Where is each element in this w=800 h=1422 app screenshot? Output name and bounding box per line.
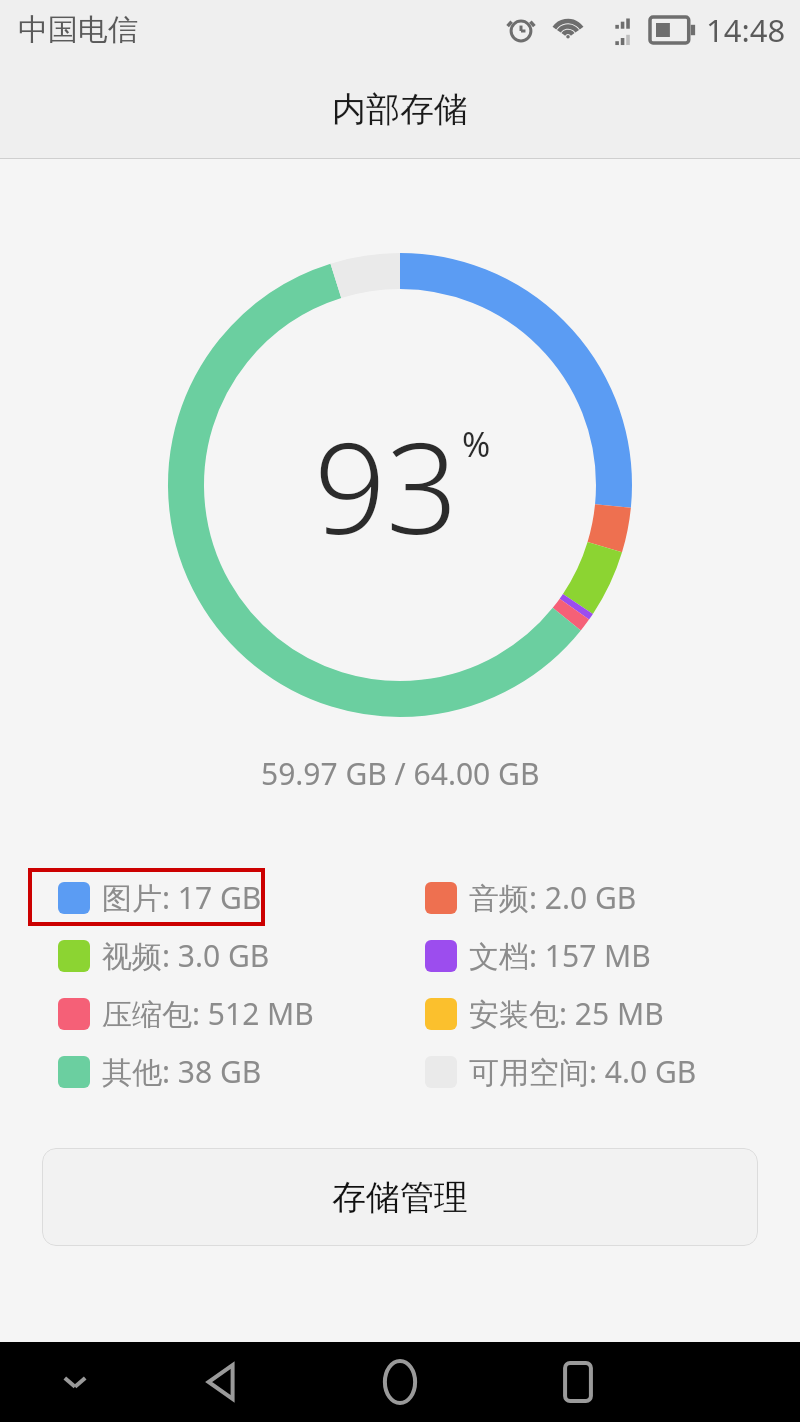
staticText: 可用空间: 4.0 GB — [469, 1051, 697, 1092]
staticText: 图片: 17 GB — [102, 877, 262, 918]
button[interactable]: 压缩包: 512 MB — [58, 993, 314, 1034]
button[interactable]: Home — [365, 1347, 435, 1417]
button[interactable]: 音频: 2.0 GB — [425, 877, 637, 918]
staticText: 文档: 157 MB — [469, 935, 651, 976]
staticText: % — [462, 421, 491, 467]
button[interactable]: Back — [190, 1349, 256, 1415]
button[interactable]: Hide keyboard — [44, 1351, 106, 1413]
staticText: 压缩包: 512 MB — [102, 993, 314, 1034]
button[interactable]: 可用空间: 4.0 GB — [425, 1051, 697, 1092]
button[interactable]: 视频: 3.0 GB — [58, 935, 270, 976]
button[interactable]: Recent apps — [545, 1349, 611, 1415]
staticText: 音频: 2.0 GB — [469, 877, 637, 918]
staticText: 中国电信 — [18, 11, 138, 49]
staticText: 内部存储 — [332, 88, 468, 131]
button[interactable]: 文档: 157 MB — [425, 935, 651, 976]
staticText: 14:48 — [706, 9, 786, 51]
staticText: 59.97 GB / 64.00 GB — [261, 753, 540, 794]
staticText: 存储管理 — [332, 1176, 468, 1219]
staticText: 视频: 3.0 GB — [102, 935, 270, 976]
staticText: 安装包: 25 MB — [469, 993, 664, 1034]
staticText: 其他: 38 GB — [102, 1051, 262, 1092]
staticText: 93 — [314, 399, 458, 571]
button[interactable]: 图片: 17 GB — [58, 877, 262, 918]
button[interactable]: 其他: 38 GB — [58, 1051, 262, 1092]
button[interactable]: 存储管理 — [42, 1148, 758, 1246]
button[interactable]: 安装包: 25 MB — [425, 993, 664, 1034]
